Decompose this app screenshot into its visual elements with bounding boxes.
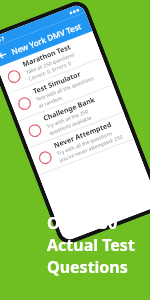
staticText: you've never attempted: 250: [59, 133, 124, 164]
staticText: Never Attempted: [52, 120, 113, 151]
staticText: New York DMV Test: [10, 20, 83, 57]
staticText: 10:17: [0, 35, 6, 46]
staticText: Try with all the questions: [56, 130, 114, 157]
staticText: Test with all the questions: [35, 75, 95, 103]
staticText: Test Simulator: [32, 69, 83, 97]
staticText: at random: [38, 94, 64, 110]
staticText: Over 250: [47, 212, 118, 234]
staticText: Try with all the 250: [46, 108, 90, 130]
staticText: Actual Test: [47, 234, 135, 256]
staticText: Questions: [47, 256, 128, 278]
staticText: Marathon Test: [21, 42, 72, 70]
staticText: Correct: 0, Errors: 0: [27, 60, 73, 83]
staticText: questions available: [48, 114, 94, 137]
button[interactable]: Back: [0, 49, 8, 61]
button[interactable]: Never Attempted: [28, 112, 134, 175]
button[interactable]: Marathon Test: [0, 31, 103, 94]
button[interactable]: Test Simulator: [8, 58, 113, 121]
staticText: Challenge Bank: [42, 95, 97, 124]
staticText: Take all 250 questions: [25, 51, 76, 76]
button[interactable]: Challenge Bank: [18, 85, 123, 148]
